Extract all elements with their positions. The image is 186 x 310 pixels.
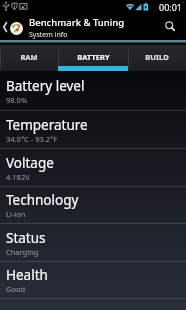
button[interactable]: Navigate up (0, 13, 25, 40)
staticText: 34.0°C - 93.2°F (6, 134, 58, 144)
button[interactable]: Status (0, 224, 186, 261)
button[interactable]: BATTERY (58, 45, 128, 71)
button[interactable]: Temperature (0, 111, 186, 148)
button[interactable]: Technology (0, 187, 186, 223)
button[interactable]: Search (154, 13, 186, 40)
button[interactable]: BUILD (128, 45, 186, 71)
button[interactable]: Battery level (0, 71, 186, 110)
staticText: Benchmark & Tuning (29, 16, 125, 29)
staticText: 98.0% (6, 95, 28, 105)
button[interactable]: RAM (0, 45, 58, 71)
staticText: Health (6, 266, 48, 284)
staticText: RAM (20, 52, 38, 62)
staticText: Battery level (6, 77, 85, 95)
button[interactable]: Health (0, 262, 186, 298)
staticText: Voltage (6, 154, 54, 172)
staticText: System info (29, 30, 68, 40)
button[interactable]: Voltage (0, 149, 186, 186)
staticText: BATTERY (77, 52, 110, 62)
staticText: Charging (6, 247, 39, 257)
staticText: Good (6, 284, 26, 294)
staticText: 4.182V (6, 172, 30, 182)
staticText: 00:01 (159, 1, 183, 13)
staticText: Li-ion (6, 209, 26, 219)
staticText: Technology (6, 191, 79, 209)
staticText: Temperature (6, 116, 88, 134)
staticText: Status (6, 229, 46, 247)
staticText: BUILD (145, 52, 169, 62)
